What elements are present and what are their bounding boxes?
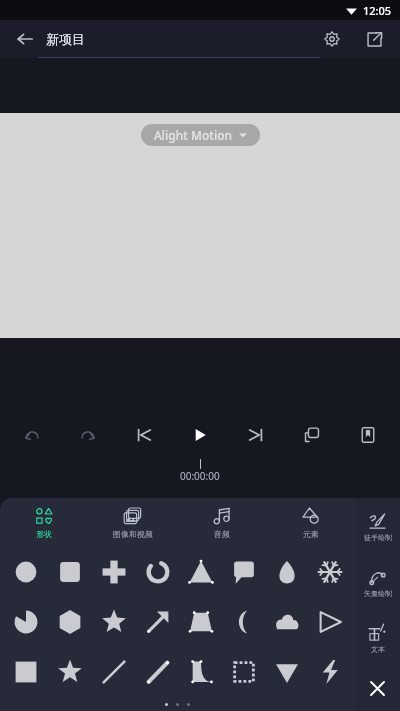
button[interactable]: Shape 3	[136, 546, 179, 597]
staticText: 形状	[36, 529, 52, 539]
button[interactable]: Shape 9	[48, 597, 92, 647]
button[interactable]: Shape 22	[265, 647, 308, 697]
staticText: 徒手绘制	[364, 533, 392, 542]
button[interactable]: Shape 0	[4, 546, 48, 597]
button[interactable]: Go to start	[126, 417, 162, 453]
button[interactable]: Shape 4	[179, 546, 222, 597]
button[interactable]: Shape 21	[222, 647, 265, 697]
staticText: 00:00:00	[180, 469, 220, 483]
button[interactable]: Shape 16	[4, 647, 48, 697]
staticText: Alight Motion	[154, 127, 233, 143]
button[interactable]: Shape 11	[136, 597, 179, 647]
button[interactable]: Shape 15	[308, 597, 351, 647]
button[interactable]: 矢量绘制	[355, 554, 400, 610]
button[interactable]: Duplicate	[294, 417, 330, 453]
staticText: 新项目	[46, 31, 85, 47]
button[interactable]: Shape 14	[265, 597, 308, 647]
button[interactable]: Shape 19	[136, 647, 179, 697]
button[interactable]: Bookmark	[350, 417, 386, 453]
button[interactable]: Shape 18	[92, 647, 136, 697]
button[interactable]: Shape 20	[179, 647, 222, 697]
button[interactable]: Redo	[70, 417, 106, 453]
button[interactable]: Shape 5	[222, 546, 265, 597]
button[interactable]: 形状	[0, 498, 88, 546]
button[interactable]: 图像和视频	[88, 498, 177, 546]
staticText: 图像和视频	[113, 529, 153, 539]
button[interactable]: Shape 8	[4, 597, 48, 647]
button[interactable]: Shape 6	[265, 546, 308, 597]
button[interactable]: 文本	[355, 610, 400, 666]
button[interactable]: Undo	[14, 417, 50, 453]
button[interactable]: 徒手绘制	[355, 498, 400, 554]
button[interactable]: Shape 10	[92, 597, 136, 647]
button[interactable]: Close	[355, 666, 400, 711]
staticText: 12:05	[363, 3, 392, 18]
button[interactable]: Go to end	[238, 417, 274, 453]
button[interactable]: Shape 23	[308, 647, 351, 697]
button[interactable]: 音频	[177, 498, 266, 546]
button[interactable]: Alight Motion	[141, 124, 260, 146]
button[interactable]: Shape 13	[222, 597, 265, 647]
button[interactable]: Shape 12	[179, 597, 222, 647]
button[interactable]: Settings	[316, 23, 348, 55]
staticText: 音频	[214, 529, 230, 539]
staticText: 元素	[303, 529, 319, 539]
button[interactable]: Play	[182, 417, 218, 453]
button[interactable]: Shape 1	[48, 546, 92, 597]
staticText: 文本	[371, 645, 385, 654]
button[interactable]: 元素	[266, 498, 355, 546]
button[interactable]: Export	[358, 23, 390, 55]
staticText: 矢量绘制	[364, 589, 392, 598]
button[interactable]: Shape 2	[92, 546, 136, 597]
button[interactable]: Back	[10, 24, 40, 54]
button[interactable]: Shape 17	[48, 647, 92, 697]
button[interactable]: Shape 7	[308, 546, 351, 597]
